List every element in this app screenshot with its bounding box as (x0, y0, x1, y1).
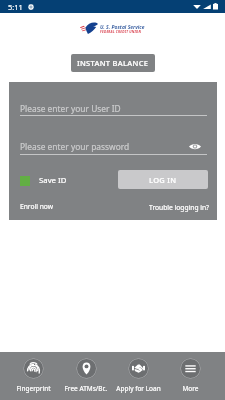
staticText: Please enter your password (20, 141, 130, 152)
button[interactable]: LOG IN (118, 170, 208, 189)
staticText: U. S. Postal Service (100, 24, 145, 31)
button[interactable]: Trouble logging in? (149, 203, 210, 212)
button[interactable]: INSTANT BALANCE (71, 54, 155, 72)
staticText: Fingerprint (16, 384, 51, 393)
staticText: Free ATMs/Br.. (64, 384, 108, 393)
staticText: 5:11 (8, 2, 23, 12)
staticText: Please enter your User ID (20, 103, 121, 114)
staticText: Apply for Loan (116, 384, 161, 393)
staticText: Save ID (39, 175, 67, 186)
button[interactable]: Show password (187, 138, 203, 154)
staticText: LOG IN (149, 175, 177, 185)
button[interactable]: Fingerprint (7, 352, 60, 400)
button[interactable]: Apply for Loan (112, 352, 164, 400)
button[interactable]: Enroll now (20, 202, 54, 211)
button[interactable]: Save ID (18, 173, 69, 188)
button[interactable]: More (164, 352, 216, 400)
button[interactable]: Free ATMs/Br.. (60, 352, 112, 400)
staticText: FEDERAL CREDIT UNION (100, 29, 142, 33)
staticText: More (182, 384, 199, 393)
staticText: INSTANT BALANCE (77, 58, 149, 68)
